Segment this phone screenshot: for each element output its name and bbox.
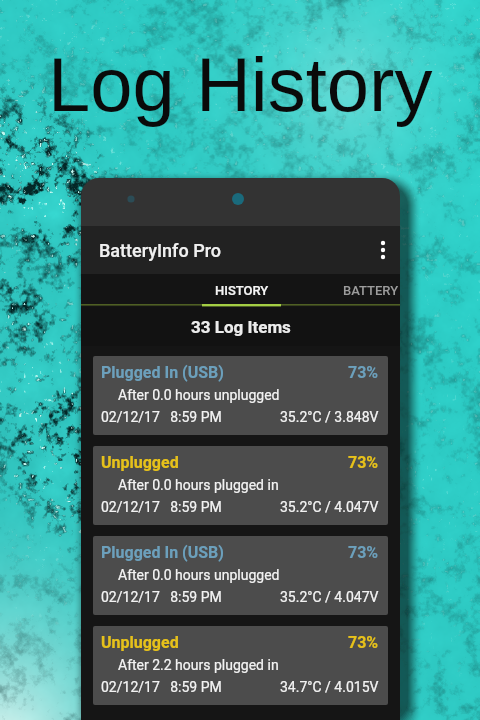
staticText: 02/12/17 8:59 PM: [101, 499, 222, 515]
staticText: 73%: [348, 633, 379, 652]
staticText: 35.2°C / 4.047V: [280, 589, 379, 605]
staticText: Plugged In (USB): [101, 543, 224, 562]
staticText: HISTORY: [215, 283, 269, 298]
staticText: 73%: [348, 363, 379, 382]
button[interactable]: Plugged In (USB): [93, 536, 388, 615]
staticText: 73%: [348, 543, 379, 562]
staticText: Plugged In (USB): [101, 363, 224, 382]
button[interactable]: BATTERY: [281, 274, 400, 307]
button[interactable]: Plugged In (USB): [93, 356, 388, 435]
button[interactable]: More options: [366, 226, 400, 274]
staticText: After 2.2 hours plugged in: [118, 657, 279, 673]
button[interactable]: Unplugged: [93, 446, 388, 525]
staticText: BatteryInfo Pro: [99, 240, 221, 261]
staticText: Log History: [48, 42, 433, 127]
staticText: 02/12/17 8:59 PM: [101, 679, 222, 695]
staticText: 02/12/17 8:59 PM: [101, 589, 222, 605]
button[interactable]: Unplugged: [93, 626, 388, 705]
staticText: 35.2°C / 3.848V: [280, 409, 379, 425]
staticText: Unplugged: [101, 453, 179, 472]
staticText: 73%: [348, 453, 379, 472]
staticText: 33 Log Items: [191, 317, 291, 337]
staticText: 02/12/17 8:59 PM: [101, 409, 222, 425]
staticText: BATTERY: [343, 283, 399, 298]
button[interactable]: HISTORY: [202, 274, 281, 307]
staticText: 34.7°C / 4.015V: [280, 679, 379, 695]
staticText: After 0.0 hours plugged in: [118, 477, 279, 493]
staticText: 35.2°C / 4.047V: [280, 499, 379, 515]
staticText: Unplugged: [101, 633, 179, 652]
staticText: After 0.0 hours unplugged: [118, 387, 280, 403]
staticText: After 0.0 hours unplugged: [118, 567, 280, 583]
